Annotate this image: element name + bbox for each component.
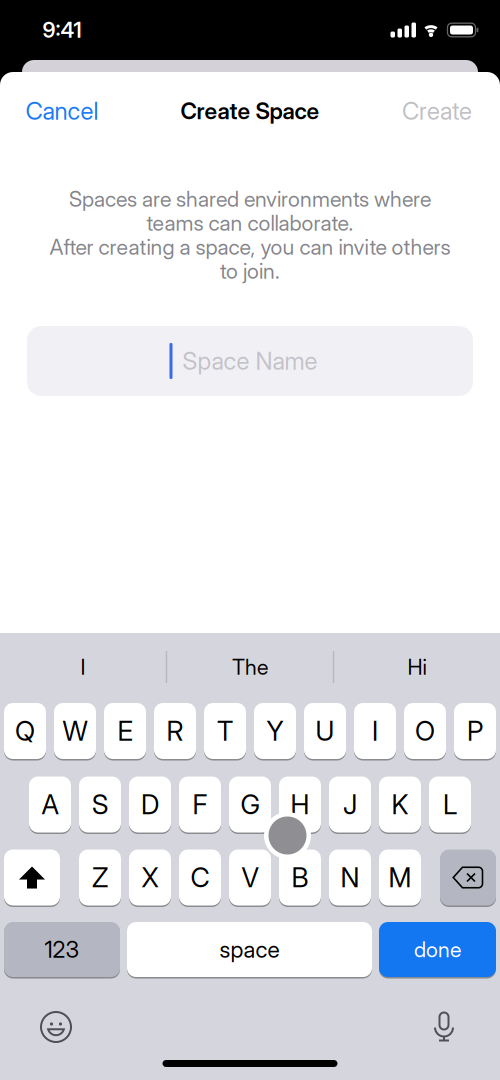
button[interactable]: Y — [254, 701, 296, 760]
button[interactable]: The — [175, 644, 325, 690]
button[interactable]: Emoji — [34, 1005, 78, 1049]
staticText: After creating a space, you can invite o… — [49, 234, 450, 260]
staticText: P — [467, 715, 483, 747]
staticText: T — [217, 715, 233, 747]
button[interactable]: X — [129, 848, 171, 907]
staticText: I — [372, 715, 378, 747]
button[interactable]: L — [429, 775, 471, 834]
button[interactable]: Delete — [440, 848, 496, 907]
staticText: D — [141, 789, 159, 820]
button[interactable]: B — [279, 848, 321, 907]
button[interactable]: Dictate — [422, 1005, 466, 1049]
staticText: G — [240, 789, 259, 820]
staticText: Z — [92, 862, 108, 893]
button[interactable]: P — [454, 701, 496, 760]
staticText: F — [192, 789, 207, 820]
button[interactable]: H — [279, 775, 321, 834]
button[interactable]: Cancel — [25, 97, 98, 125]
staticText: H — [290, 789, 309, 820]
staticText: Spaces are shared environments where — [69, 186, 431, 212]
staticText: J — [343, 789, 357, 820]
staticText: C — [190, 862, 209, 893]
button[interactable]: V — [229, 848, 271, 907]
button[interactable]: N — [329, 848, 371, 907]
button[interactable]: Hi — [342, 644, 492, 690]
staticText: W — [62, 715, 87, 747]
staticText: L — [443, 789, 457, 820]
button[interactable]: Space Name — [27, 326, 473, 396]
staticText: R — [166, 715, 183, 747]
staticText: Q — [15, 715, 35, 747]
staticText: The — [232, 654, 268, 680]
button[interactable]: K — [379, 775, 421, 834]
button[interactable]: S — [79, 775, 121, 834]
staticText: V — [241, 862, 258, 893]
staticText: I — [80, 654, 85, 680]
button[interactable]: Z — [79, 848, 121, 907]
staticText: space — [219, 936, 279, 963]
button[interactable]: done — [379, 920, 496, 978]
staticText: Create Space — [180, 98, 319, 124]
button[interactable]: space — [127, 920, 372, 978]
staticText: N — [340, 862, 359, 893]
staticText: 9:41 — [42, 17, 81, 43]
button[interactable]: J — [329, 775, 371, 834]
staticText: X — [141, 862, 158, 893]
staticText: E — [117, 715, 132, 747]
button[interactable]: D — [129, 775, 171, 834]
button[interactable]: W — [54, 701, 96, 760]
staticText: Space Name — [182, 347, 317, 375]
button[interactable]: C — [179, 848, 221, 907]
staticText: to join. — [220, 258, 280, 284]
button[interactable]: Shift — [4, 848, 60, 907]
staticText: done — [414, 937, 461, 962]
staticText: 123 — [44, 936, 79, 963]
button[interactable]: M — [379, 848, 421, 907]
button[interactable]: I — [354, 701, 396, 760]
staticText: A — [41, 789, 58, 820]
button[interactable]: O — [404, 701, 446, 760]
staticText: Y — [266, 715, 283, 747]
button[interactable]: E — [104, 701, 146, 760]
staticText: B — [291, 862, 308, 893]
staticText: O — [415, 715, 435, 747]
button[interactable]: R — [154, 701, 196, 760]
staticText: U — [315, 715, 334, 747]
staticText: S — [92, 789, 108, 820]
button[interactable]: A — [29, 775, 71, 834]
button[interactable]: I — [8, 644, 158, 690]
staticText: Create — [402, 97, 472, 125]
button[interactable]: 123 — [4, 920, 120, 978]
staticText: Cancel — [25, 97, 98, 125]
staticText: teams can collaborate. — [146, 210, 353, 236]
button[interactable]: Q — [4, 701, 46, 760]
staticText: K — [391, 789, 408, 820]
button[interactable]: F — [179, 775, 221, 834]
button[interactable]: U — [304, 701, 346, 760]
button[interactable]: G — [229, 775, 271, 834]
staticText: Hi — [407, 654, 426, 680]
button[interactable]: T — [204, 701, 246, 760]
button[interactable]: Create — [402, 97, 472, 125]
staticText: M — [388, 862, 411, 893]
